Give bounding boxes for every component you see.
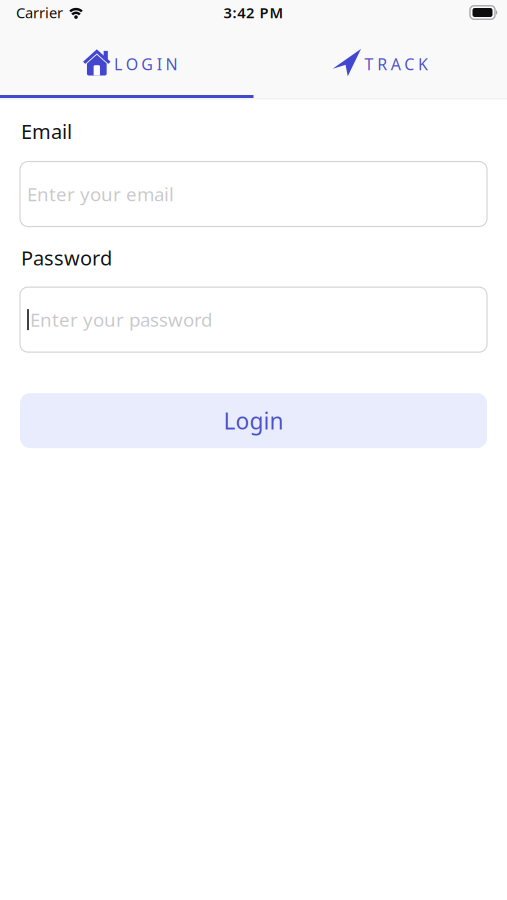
button[interactable]: Login xyxy=(20,393,487,448)
staticText: L xyxy=(114,53,122,75)
staticText: G xyxy=(141,53,153,75)
staticText: K xyxy=(418,53,428,75)
staticText: Enter your email xyxy=(27,182,174,206)
staticText: N xyxy=(165,53,177,75)
button[interactable]: Enter your email xyxy=(20,162,487,227)
staticText: A xyxy=(391,53,401,75)
staticText: Password xyxy=(21,245,112,271)
button[interactable]: T xyxy=(253,30,507,95)
staticText: R xyxy=(377,53,387,75)
staticText: O xyxy=(126,53,138,75)
staticText: C xyxy=(404,53,414,75)
staticText: Login xyxy=(223,406,283,436)
staticText: T xyxy=(365,53,374,75)
staticText: Email xyxy=(21,118,72,145)
staticText: 3:42 PM xyxy=(224,3,283,22)
staticText: I xyxy=(157,53,162,75)
button[interactable]: Enter your password xyxy=(20,287,487,352)
staticText: Carrier xyxy=(16,3,63,22)
staticText: Enter your password xyxy=(30,307,212,332)
button[interactable]: L xyxy=(0,30,253,95)
